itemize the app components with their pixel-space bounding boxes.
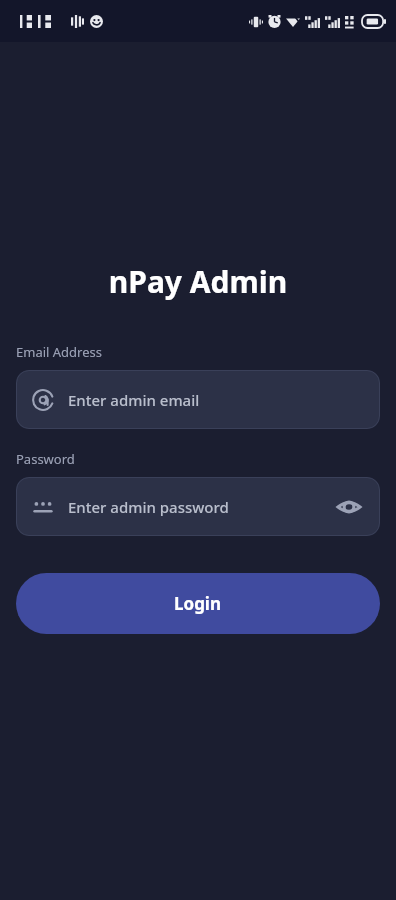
- staticText: Email Address: [16, 343, 102, 361]
- button[interactable]: Enter admin email: [16, 370, 380, 429]
- staticText: Login: [174, 592, 222, 615]
- staticText: Enter admin email: [68, 390, 364, 410]
- staticText: Password: [16, 450, 75, 468]
- button[interactable]: Show password: [334, 492, 364, 522]
- staticText: nPay Admin: [16, 261, 380, 302]
- staticText: Enter admin password: [68, 497, 334, 517]
- button[interactable]: Login: [16, 573, 380, 634]
- button[interactable]: Enter admin password: [16, 477, 380, 536]
